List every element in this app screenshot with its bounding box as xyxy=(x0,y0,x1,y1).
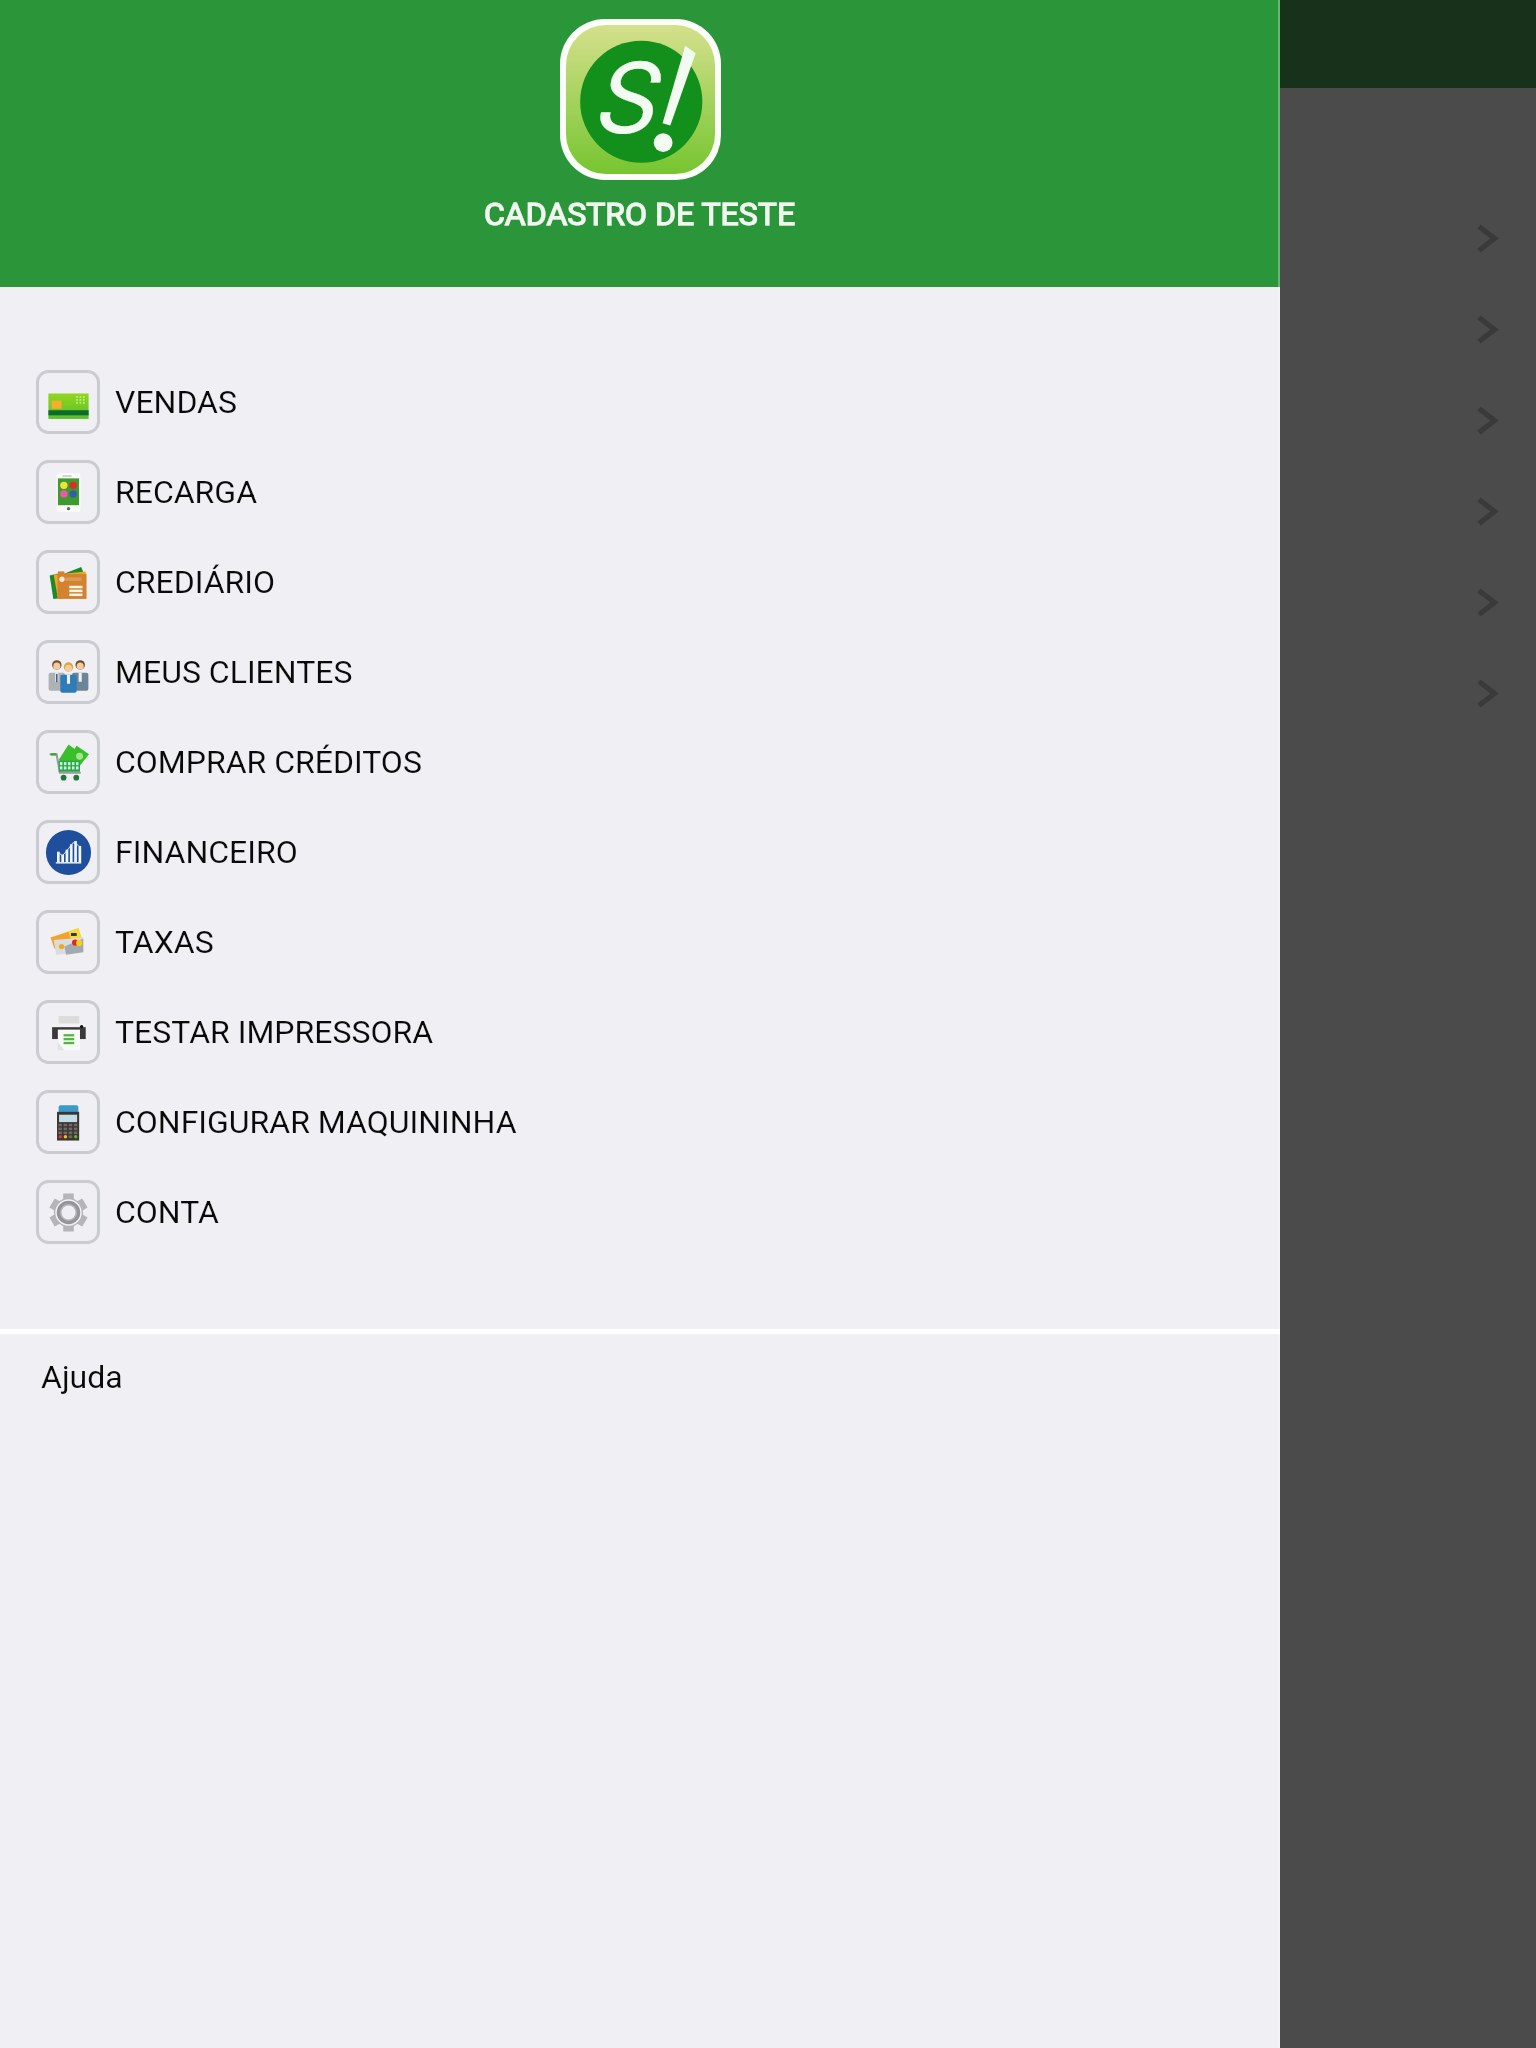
button[interactable]: MEUS CLIENTES xyxy=(0,627,1280,717)
staticText: COMPRAR CRÉDITOS xyxy=(115,743,422,781)
staticText: CREDIÁRIO xyxy=(115,563,276,601)
staticText: S xyxy=(592,40,652,157)
button[interactable]: Open list item 6 xyxy=(0,648,1536,739)
button[interactable]: COMPRAR CRÉDITOS xyxy=(0,717,1280,807)
staticText: MEUS CLIENTES xyxy=(115,653,353,691)
button[interactable]: VENDAS xyxy=(0,357,1280,447)
button[interactable]: TESTAR IMPRESSORA xyxy=(0,987,1280,1077)
staticText: TESTAR IMPRESSORA xyxy=(115,1013,434,1051)
button[interactable]: CREDIÁRIO xyxy=(0,537,1280,627)
staticText: RECARGA xyxy=(115,473,257,511)
staticText: CONTA xyxy=(115,1193,219,1231)
staticText: Ajuda xyxy=(41,1358,123,1396)
button[interactable]: Open list item 4 xyxy=(0,466,1536,557)
staticText: CADASTRO DE TESTE xyxy=(484,195,796,233)
button[interactable]: TAXAS xyxy=(0,897,1280,987)
button[interactable]: App logo xyxy=(560,19,721,180)
button[interactable]: Open list item 5 xyxy=(0,557,1536,648)
button[interactable]: FINANCEIRO xyxy=(0,807,1280,897)
staticText: VENDAS xyxy=(115,383,237,421)
button[interactable]: CONTA xyxy=(0,1167,1280,1257)
button[interactable]: CONFIGURAR MAQUININHA xyxy=(0,1077,1280,1167)
staticText: FINANCEIRO xyxy=(115,833,298,871)
staticText: CONFIGURAR MAQUININHA xyxy=(115,1103,517,1141)
button[interactable]: RECARGA xyxy=(0,447,1280,537)
button[interactable]: Open list item 2 xyxy=(0,284,1536,375)
button[interactable]: Ajuda xyxy=(0,1334,1280,1420)
button[interactable]: Open list item 3 xyxy=(0,375,1536,466)
staticText: TAXAS xyxy=(115,923,214,961)
button[interactable]: Open list item 1 xyxy=(0,193,1536,284)
